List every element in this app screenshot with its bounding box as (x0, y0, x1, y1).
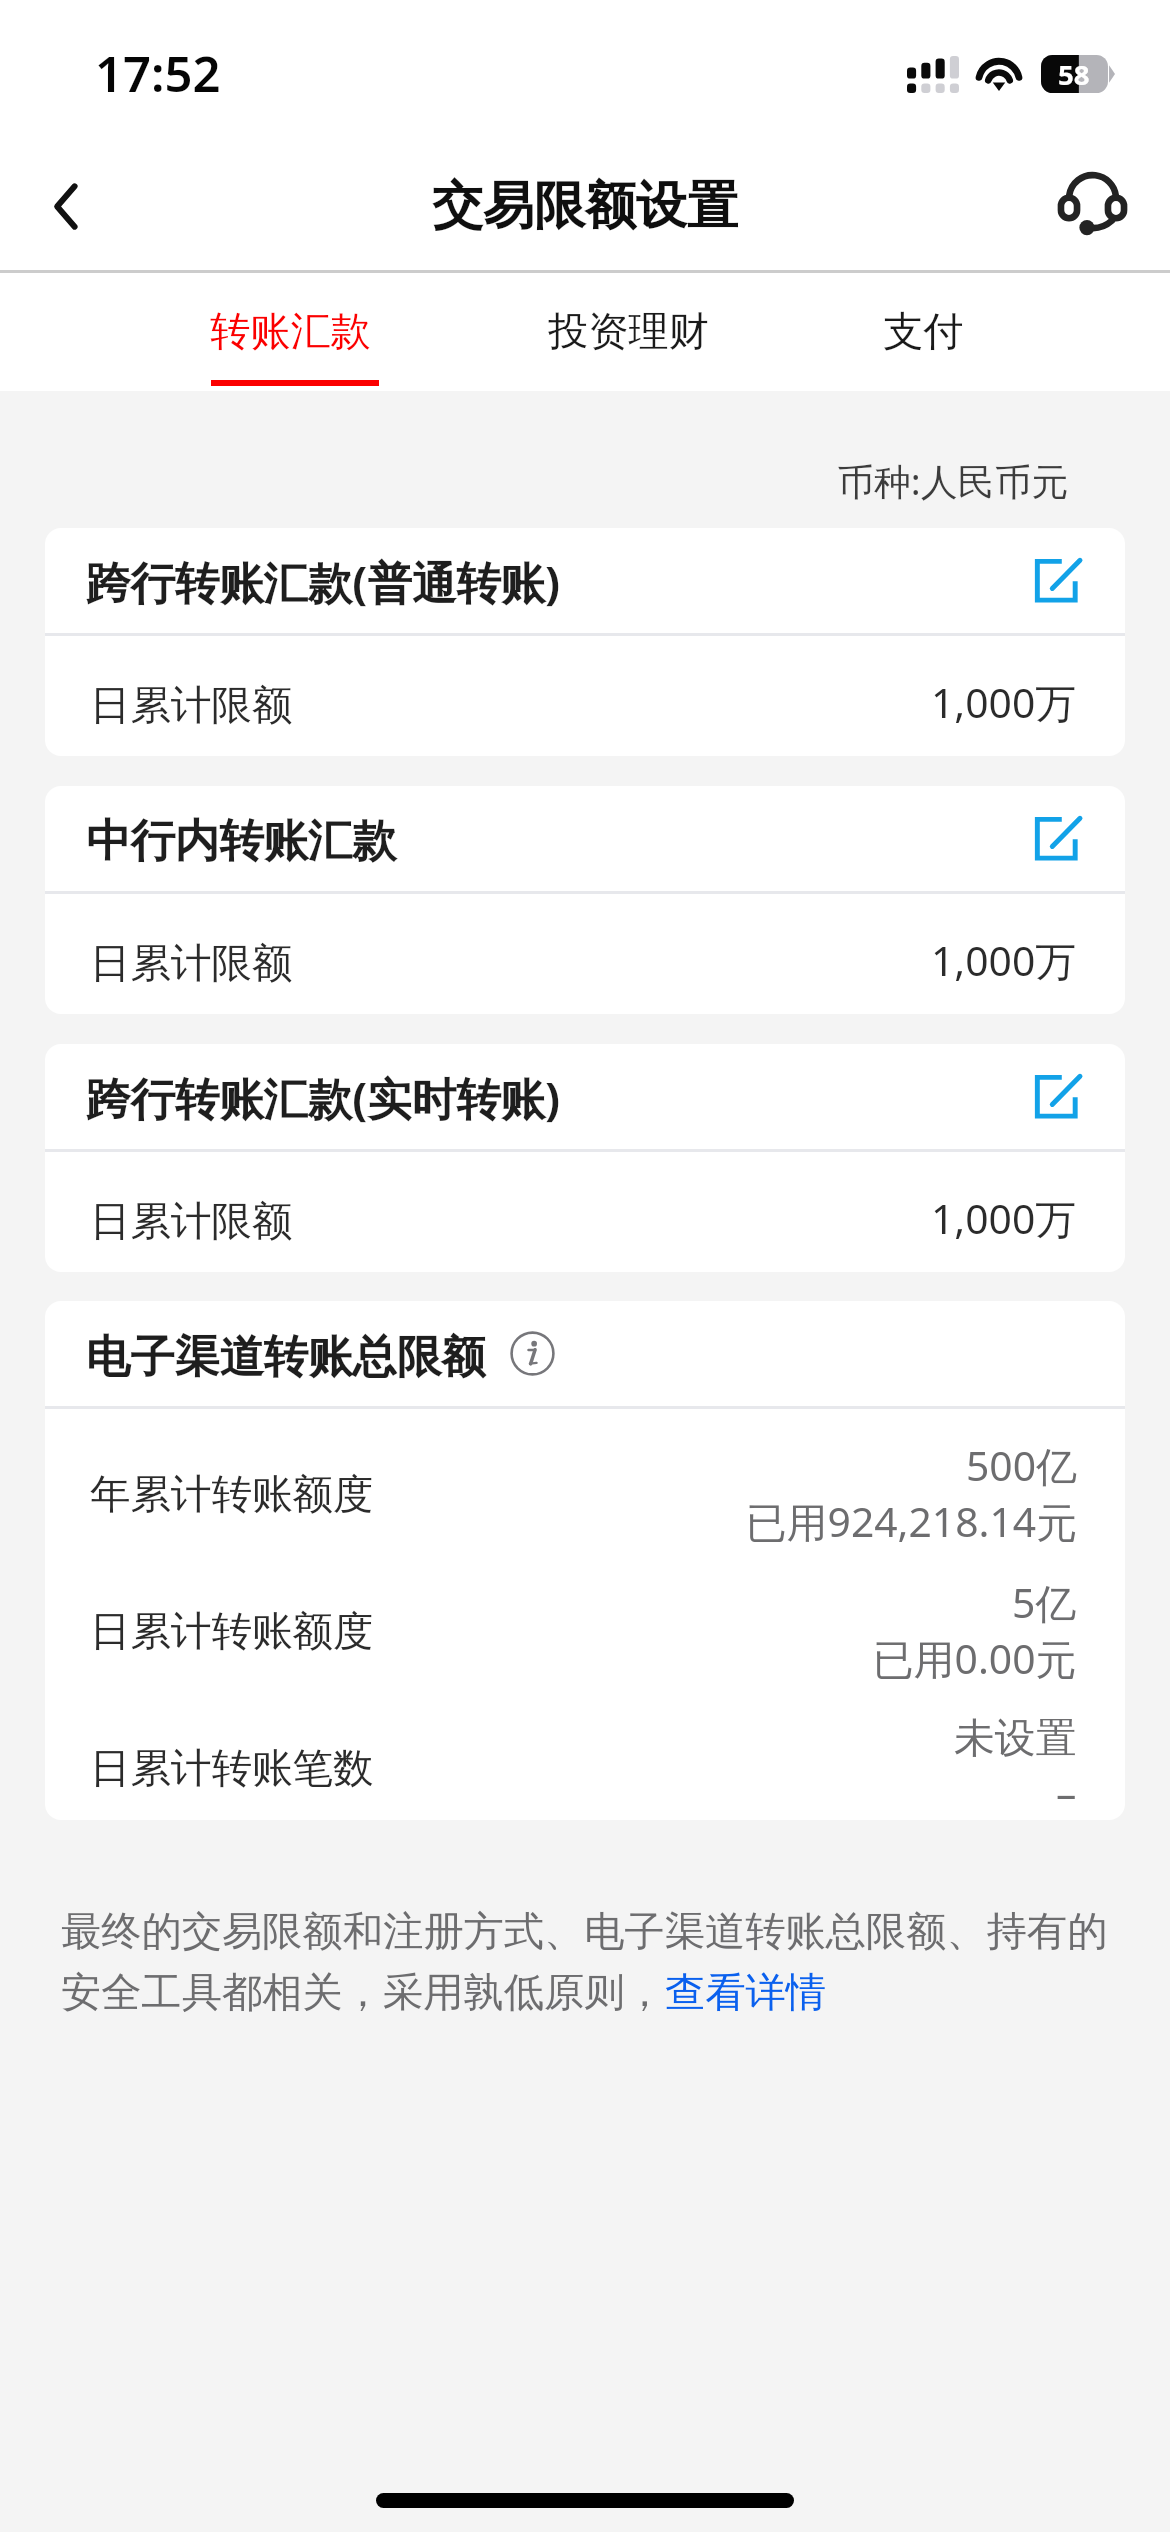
button[interactable]: 日累计限额 (45, 636, 1125, 756)
staticText: 日累计限额 (90, 680, 293, 731)
staticText: 5亿 (1012, 1574, 1077, 1630)
staticText: – (1056, 1764, 1077, 1820)
button[interactable]: 跨行转账汇款(实时转账) (45, 1044, 1125, 1149)
staticText: 1,000万 (931, 932, 1077, 988)
button[interactable]: 支付 (796, 273, 1051, 391)
button[interactable]: Edit limit (1033, 1073, 1080, 1120)
staticText: 58 (1058, 55, 1090, 93)
staticText: 日累计限额 (90, 1196, 293, 1247)
staticText: 日累计转账笔数 (90, 1743, 374, 1794)
button[interactable]: 日累计限额 (45, 1152, 1125, 1272)
button[interactable]: 中行内转账汇款 (45, 786, 1125, 891)
button[interactable]: Info (505, 1326, 559, 1380)
button[interactable]: Edit limit (1033, 815, 1080, 862)
staticText: 日累计转账额度 (90, 1606, 374, 1657)
staticText: 最终的交易限额和注册方式、电子渠道转账总限额、持有的 (61, 1906, 1108, 1957)
button[interactable]: Edit limit (1033, 557, 1080, 604)
staticText: 跨行转账汇款(普通转账) (86, 552, 1033, 613)
staticText: 500亿 (966, 1437, 1077, 1493)
staticText: 1,000万 (931, 674, 1077, 730)
staticText: 币种:人民币元 (837, 456, 1069, 506)
staticText: 日累计限额 (90, 938, 293, 989)
staticText: 交易限额设置 (432, 174, 738, 238)
button[interactable]: Customer service (1020, 130, 1170, 270)
staticText: 已用924,218.14元 (746, 1493, 1077, 1549)
staticText: 支付 (883, 306, 964, 357)
staticText: 17:52 (95, 40, 221, 107)
staticText: 1,000万 (931, 1190, 1077, 1246)
staticText: 电子渠道转账总限额 (86, 1329, 486, 1385)
button[interactable]: 跨行转账汇款(普通转账) (45, 528, 1125, 633)
staticText: 转账汇款 (210, 306, 371, 357)
staticText: 跨行转账汇款(实时转账) (86, 1068, 1033, 1129)
button[interactable]: 查看详情 (665, 1967, 826, 2018)
button[interactable]: 转账汇款 (119, 273, 461, 391)
button[interactable]: 年累计转账额度 (45, 1409, 1125, 1546)
button[interactable]: 投资理财 (461, 273, 796, 391)
staticText: 未设置 (954, 1713, 1077, 1764)
staticText: 中行内转账汇款 (86, 813, 1033, 869)
button[interactable]: 日累计限额 (45, 894, 1125, 1014)
button[interactable]: 日累计转账额度 (45, 1546, 1125, 1683)
staticText: 投资理财 (548, 306, 709, 357)
staticText: 已用0.00元 (873, 1630, 1077, 1686)
staticText: 年累计转账额度 (90, 1469, 374, 1520)
staticText: 安全工具都相关，采用孰低原则， (61, 1967, 665, 2018)
button[interactable]: Back (0, 130, 150, 270)
button[interactable]: 日累计转账笔数 (45, 1683, 1125, 1820)
